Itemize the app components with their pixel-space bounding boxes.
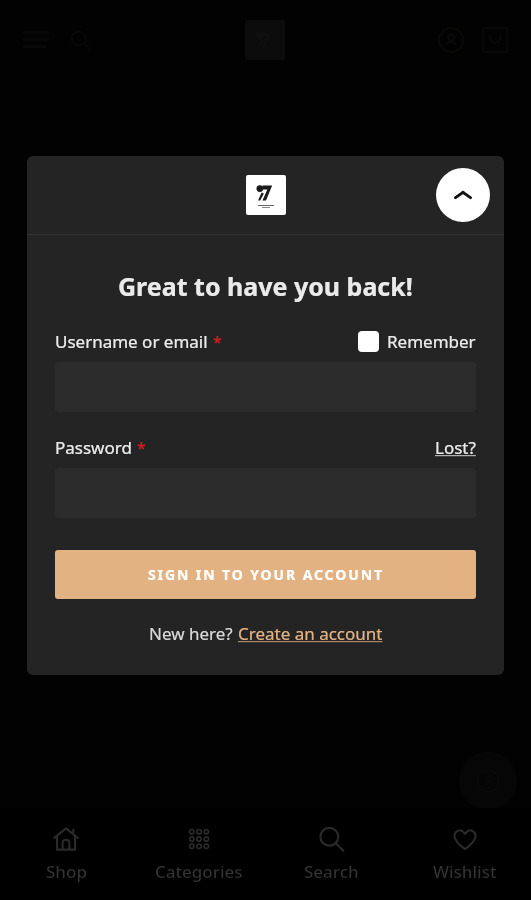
staticText: * [137,437,146,459]
staticText: New here? [149,622,238,645]
staticText: Shop [46,860,87,883]
staticText: Create an account [238,622,383,645]
staticText: Great to have you back! [118,269,413,303]
staticText: Lost? [435,436,476,459]
staticText: Search [304,860,359,883]
button[interactable]: Collapse [436,168,490,222]
button[interactable]: Create an account [238,622,383,645]
button[interactable]: Wishlist [398,822,531,885]
staticText: Remember [387,330,476,353]
button[interactable]: Remember [358,330,476,353]
staticText: Username or email [55,330,208,353]
staticText: * [213,331,222,353]
button[interactable]: Shop [0,822,132,885]
staticText: Categories [155,860,243,883]
button[interactable]: Logo [246,175,286,215]
staticText: Password [55,436,132,459]
staticText: SIGN IN TO YOUR ACCOUNT [148,565,384,584]
button[interactable]: Search [265,822,398,885]
button[interactable]: SIGN IN TO YOUR ACCOUNT [55,550,476,599]
staticText: Wishlist [433,860,497,883]
button[interactable]: Categories [132,822,265,885]
button[interactable]: Lost? [435,436,476,459]
